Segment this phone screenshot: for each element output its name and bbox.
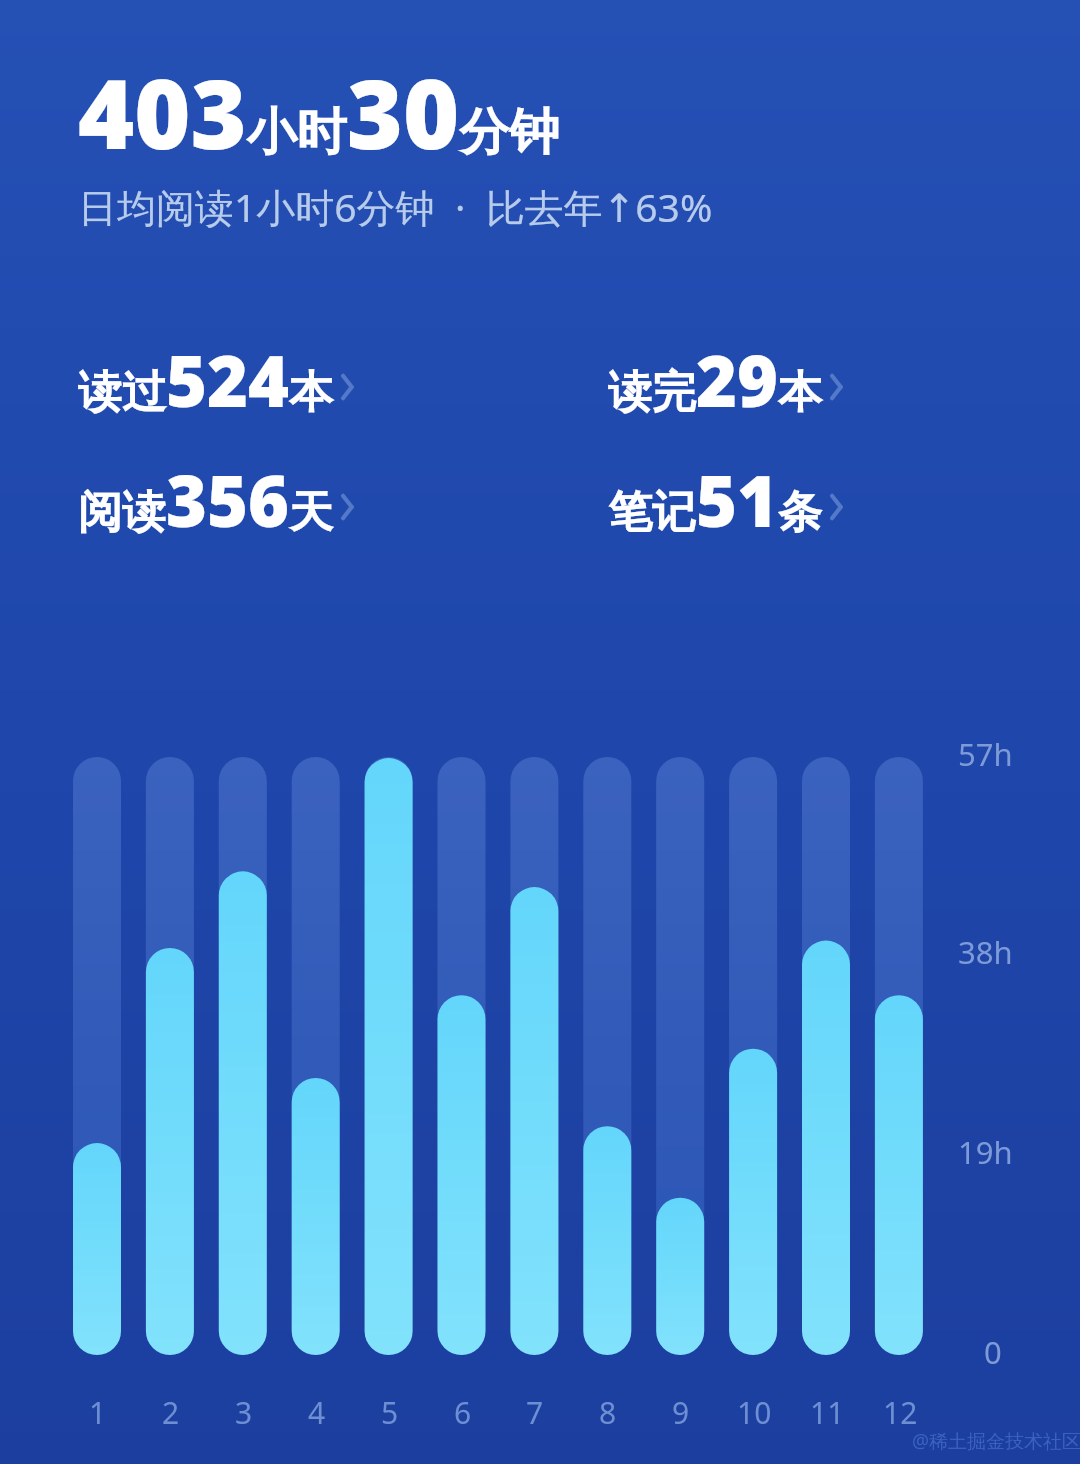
staticText: 2 bbox=[162, 1392, 180, 1433]
other: 读完29本 详情 bbox=[823, 345, 853, 415]
staticText: 7 bbox=[526, 1392, 544, 1433]
other: 笔记51条 详情 bbox=[823, 465, 853, 535]
other: 读过524本 详情 bbox=[334, 345, 364, 415]
button[interactable]: 笔记51条 bbox=[608, 452, 853, 547]
staticText: 读完29本 bbox=[608, 332, 823, 427]
staticText: 读过524本 bbox=[78, 332, 334, 427]
staticText: 5 bbox=[381, 1392, 399, 1433]
other: 阅读356天 详情 bbox=[334, 465, 364, 535]
button[interactable]: 阅读356天 bbox=[78, 452, 364, 547]
staticText: 阅读356天 bbox=[78, 452, 334, 547]
staticText: @稀土掘金技术社区 bbox=[912, 1428, 1080, 1454]
staticText: 8 bbox=[599, 1392, 617, 1433]
staticText: 9 bbox=[672, 1392, 690, 1433]
button[interactable]: 读过524本 bbox=[78, 332, 364, 427]
staticText: 日均阅读1小时6分钟 · 比去年↑63% bbox=[78, 180, 713, 233]
staticText: 57h bbox=[958, 733, 1013, 775]
staticText: 19h bbox=[958, 1131, 1013, 1173]
staticText: 0 bbox=[984, 1331, 1002, 1373]
staticText: 6 bbox=[454, 1392, 472, 1433]
staticText: 12 bbox=[883, 1392, 918, 1433]
button[interactable]: 读完29本 bbox=[608, 332, 853, 427]
staticText: 38h bbox=[958, 931, 1013, 973]
staticText: 笔记51条 bbox=[608, 452, 823, 547]
staticText: 11 bbox=[810, 1392, 845, 1433]
staticText: 3 bbox=[235, 1392, 253, 1433]
staticText: 1 bbox=[89, 1392, 107, 1433]
staticText: 10 bbox=[737, 1392, 772, 1433]
staticText: 4 bbox=[308, 1392, 326, 1433]
staticText: 403小时30分钟 bbox=[78, 46, 560, 177]
